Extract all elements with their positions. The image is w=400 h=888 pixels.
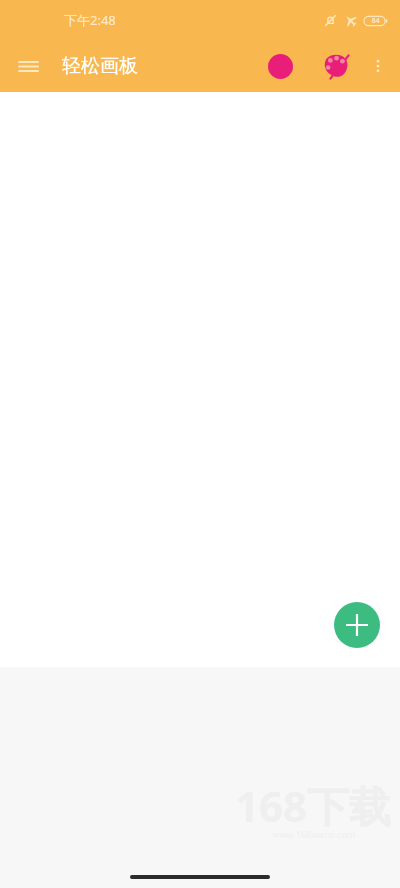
staticText: 168下载 xyxy=(235,777,392,834)
button[interactable]: Add xyxy=(334,602,380,648)
staticText: 下午2:48 xyxy=(64,11,116,29)
button[interactable]: Current color xyxy=(258,44,302,88)
button[interactable]: Palette xyxy=(314,44,358,88)
button[interactable]: More options xyxy=(360,48,396,84)
staticText: 轻松画板 xyxy=(62,54,138,78)
button[interactable]: Menu xyxy=(8,46,48,86)
staticText: 84 xyxy=(371,16,380,26)
